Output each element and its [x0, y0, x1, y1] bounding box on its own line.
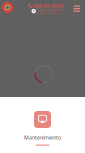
- staticText: 868 92 98 92: [34, 2, 64, 9]
- button[interactable]: Inicio: [0, 0, 13, 13]
- button[interactable]: Llamar al 868 92 98 92: [28, 2, 64, 9]
- staticText: 8:00 a 20:00 h: [37, 10, 60, 15]
- staticText: Lunes a Viernes: [37, 7, 64, 12]
- button[interactable]: Menú: [0, 0, 80, 12]
- staticText: Mantenimiento: [24, 134, 61, 141]
- button[interactable]: Mantenimiento: [24, 111, 61, 146]
